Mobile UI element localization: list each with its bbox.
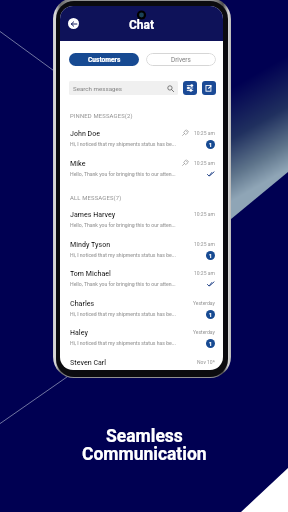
button[interactable]: John Doe bbox=[60, 127, 223, 151]
staticText: 1 bbox=[209, 312, 212, 318]
staticText: James Harvey bbox=[70, 210, 116, 218]
staticText: PINNED MESSAGES(2) bbox=[70, 113, 133, 120]
staticText: Chat bbox=[129, 18, 155, 32]
staticText: Hi, I noticed that my shipments status h… bbox=[70, 340, 176, 346]
staticText: Mike bbox=[70, 159, 86, 167]
staticText: Yesterday bbox=[193, 329, 215, 335]
button[interactable]: Drivers bbox=[146, 53, 216, 66]
staticText: ALL MESSAGES(7) bbox=[70, 195, 122, 202]
staticText: Hi, I noticed that my shipments status h… bbox=[70, 141, 176, 147]
staticText: 10:25 am bbox=[194, 270, 215, 276]
button[interactable]: Haley bbox=[60, 326, 223, 350]
staticText: Hi, I noticed that my shipments status h… bbox=[70, 311, 176, 317]
staticText: Hi, I noticed that my shipments status h… bbox=[70, 252, 176, 258]
staticText: Search messages bbox=[73, 85, 122, 92]
button[interactable]: Tom Michael bbox=[60, 267, 223, 291]
staticText: Mindy Tyson bbox=[70, 240, 111, 248]
button[interactable]: Filter bbox=[183, 81, 197, 95]
staticText: 1 bbox=[209, 253, 212, 259]
staticText: Communication bbox=[82, 444, 207, 465]
staticText: Steven Carl bbox=[70, 358, 107, 366]
staticText: John Doe bbox=[70, 129, 101, 137]
staticText: Yesterday bbox=[193, 300, 215, 306]
staticText: 10:25 am bbox=[194, 130, 215, 136]
staticText: Customers bbox=[88, 56, 121, 64]
staticText: 1 bbox=[209, 142, 212, 148]
staticText: Drivers bbox=[171, 56, 191, 64]
staticText: 10:25 am bbox=[194, 241, 215, 247]
button[interactable]: Customers bbox=[69, 53, 139, 66]
staticText: Hello, Thank you for bringing this to ou… bbox=[70, 222, 176, 228]
button[interactable]: Steven Carl bbox=[60, 356, 223, 370]
staticText: 1 bbox=[209, 341, 212, 347]
staticText: Nov 10* bbox=[197, 359, 215, 365]
staticText: Seamless bbox=[106, 426, 183, 447]
staticText: Hello, Thank you for bringing this to ou… bbox=[70, 281, 176, 287]
staticText: Tom Michael bbox=[70, 269, 111, 277]
button[interactable]: Back bbox=[68, 18, 79, 29]
button[interactable]: Search messages bbox=[69, 81, 178, 95]
staticText: 10:25 am bbox=[194, 211, 215, 217]
staticText: Charles bbox=[70, 299, 95, 307]
staticText: Hello, Thank you for bringing this to ou… bbox=[70, 171, 176, 177]
button[interactable]: Mike bbox=[60, 157, 223, 181]
button[interactable]: Charles bbox=[60, 297, 223, 321]
button[interactable]: James Harvey bbox=[60, 208, 223, 232]
button[interactable]: Mindy Tyson bbox=[60, 238, 223, 262]
button[interactable]: Compose bbox=[202, 81, 216, 95]
staticText: 10:25 am bbox=[194, 160, 215, 166]
staticText: Haley bbox=[70, 328, 88, 336]
